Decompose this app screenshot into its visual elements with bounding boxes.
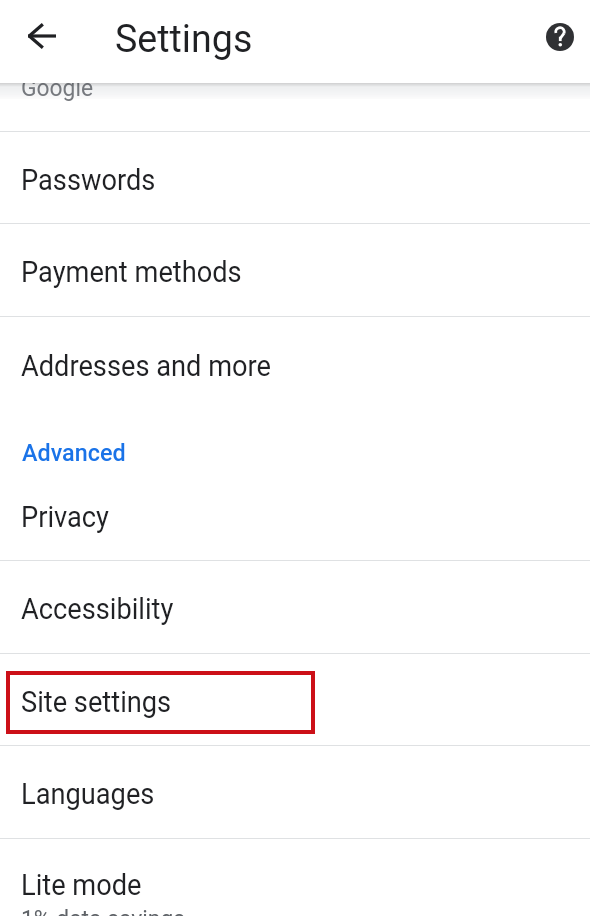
button[interactable]: Payment methods	[0, 224, 590, 316]
button[interactable]: Privacy	[0, 470, 590, 560]
button[interactable]: Navigate up	[1, 0, 83, 71]
staticText: Privacy	[21, 500, 109, 534]
staticText: 1% data savings	[21, 905, 186, 916]
staticText: Payment methods	[21, 255, 242, 289]
staticText: Google	[21, 74, 93, 102]
button[interactable]: Site settings	[0, 654, 590, 745]
staticText: Advanced	[22, 438, 126, 467]
staticText: Lite mode	[21, 868, 142, 902]
staticText: Settings	[115, 15, 253, 61]
staticText: Passwords	[21, 163, 156, 197]
button[interactable]: Accessibility	[0, 561, 590, 653]
button[interactable]: Lite mode	[0, 852, 590, 916]
staticText: Addresses and more	[21, 349, 271, 383]
button[interactable]: Help and feedback	[520, 0, 590, 74]
staticText: Accessibility	[21, 592, 174, 626]
button[interactable]: Languages	[0, 746, 590, 838]
button[interactable]: Addresses and more	[0, 317, 590, 410]
staticText: Site settings	[21, 685, 171, 719]
button[interactable]: Passwords	[0, 132, 590, 223]
staticText: Languages	[21, 777, 155, 811]
